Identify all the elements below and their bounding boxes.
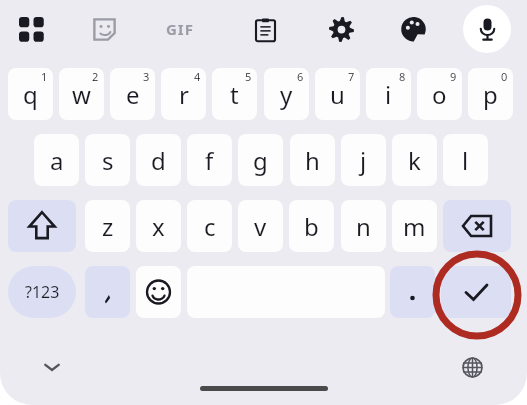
button[interactable]: n <box>341 200 386 252</box>
staticText: ?123 <box>25 281 60 303</box>
button[interactable]: v <box>238 200 283 252</box>
button[interactable]: Settings <box>320 8 362 50</box>
button[interactable]: b <box>289 200 334 252</box>
staticText: y <box>280 78 293 111</box>
button[interactable]: GIF <box>154 12 206 46</box>
button[interactable]: Hide keyboard <box>33 348 71 386</box>
staticText: q <box>23 78 38 111</box>
staticText: d <box>151 144 166 177</box>
staticText: i <box>385 78 392 111</box>
button[interactable]: e <box>110 68 155 120</box>
button[interactable]: Apps <box>10 8 52 50</box>
button[interactable]: t <box>212 68 257 120</box>
button[interactable]: q <box>8 68 53 120</box>
button[interactable]: k <box>392 134 437 186</box>
staticText: z <box>102 210 114 243</box>
button[interactable]: x <box>136 200 181 252</box>
staticText: 6 <box>297 69 304 84</box>
staticText: p <box>483 78 498 111</box>
staticText: w <box>72 78 91 111</box>
button[interactable]: y <box>264 68 309 120</box>
staticText: 0 <box>501 69 508 84</box>
staticText: 1 <box>41 69 48 84</box>
button[interactable]: p <box>468 68 513 120</box>
staticText: c <box>204 210 216 243</box>
staticText: k <box>408 144 421 177</box>
staticText: e <box>126 78 140 111</box>
button[interactable]: g <box>238 134 283 186</box>
button[interactable]: m <box>392 200 437 252</box>
staticText: b <box>304 210 319 243</box>
staticText: 3 <box>143 69 150 84</box>
button[interactable]: Enter <box>441 266 511 318</box>
button[interactable]: h <box>290 134 335 186</box>
staticText: 4 <box>194 69 201 84</box>
staticText: f <box>205 144 214 177</box>
staticText: s <box>102 144 114 177</box>
button[interactable]: Backspace <box>443 200 511 252</box>
staticText: h <box>305 144 320 177</box>
button[interactable]: Clipboard <box>244 8 286 50</box>
button[interactable]: r <box>161 68 206 120</box>
button[interactable]: c <box>187 200 232 252</box>
staticText: t <box>230 78 239 111</box>
button[interactable]: Themes <box>392 8 434 50</box>
staticText: m <box>403 210 426 243</box>
button[interactable]: a <box>34 134 79 186</box>
staticText: 5 <box>245 69 252 84</box>
button[interactable]: Change language <box>453 348 491 386</box>
staticText: r <box>179 78 189 111</box>
staticText: v <box>254 210 267 243</box>
staticText: 9 <box>450 69 457 84</box>
button[interactable]: z <box>85 200 130 252</box>
staticText: x <box>152 210 165 243</box>
staticText: 8 <box>399 69 406 84</box>
button[interactable]: i <box>366 68 411 120</box>
button[interactable]: u <box>315 68 360 120</box>
staticText: GIF <box>166 19 194 39</box>
button[interactable]: ?123 <box>8 266 76 318</box>
button[interactable]: f <box>187 134 232 186</box>
staticText: u <box>330 78 345 111</box>
button[interactable]: l <box>443 134 488 186</box>
staticText: o <box>432 78 447 111</box>
button[interactable]: s <box>85 134 130 186</box>
button[interactable]: o <box>417 68 462 120</box>
button[interactable]: w <box>59 68 104 120</box>
button[interactable]: Comma <box>85 266 130 318</box>
button[interactable]: Emoji <box>136 266 181 318</box>
staticText: 7 <box>348 69 355 84</box>
button[interactable]: j <box>341 134 386 186</box>
button[interactable]: Shift <box>8 200 76 252</box>
button[interactable]: Voice input <box>463 5 511 53</box>
staticText: l <box>462 144 469 177</box>
button[interactable]: d <box>136 134 181 186</box>
button[interactable]: Period <box>390 266 435 318</box>
staticText: 2 <box>92 69 99 84</box>
button[interactable]: Stickers <box>83 8 125 50</box>
staticText: j <box>360 144 367 177</box>
staticText: n <box>356 210 371 243</box>
staticText: g <box>253 144 268 177</box>
staticText: a <box>50 144 64 177</box>
